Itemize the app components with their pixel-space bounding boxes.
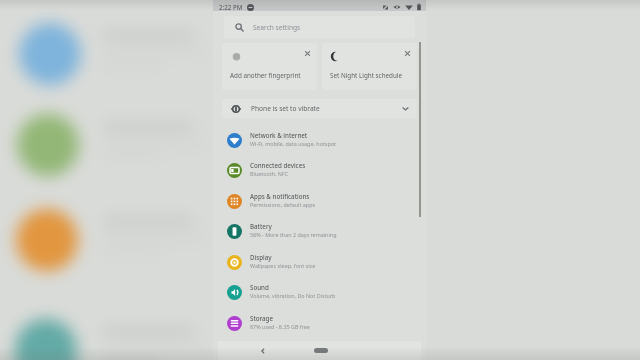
staticText: Wi-Fi, mobile, data usage, hotspot (250, 140, 336, 147)
staticText: Add another fingerprint (230, 71, 301, 80)
staticText: 58% - More than 2 days remaining (250, 231, 337, 238)
staticText: Network & internet (250, 131, 308, 139)
staticText: 87% used - 8.35 GB free (250, 323, 310, 330)
staticText: Search settings (253, 23, 301, 32)
staticText: Storage (250, 314, 273, 322)
button[interactable]: Search settings (224, 16, 415, 38)
staticText: Apps & notifications (250, 192, 310, 200)
staticText: Wallpaper, sleep, font size (250, 262, 316, 269)
staticText: Battery (250, 222, 272, 230)
button[interactable]: Apps & notifications (213, 186, 426, 217)
button[interactable]: Dismiss (222, 43, 317, 90)
staticText: Volume, vibration, Do Not Disturb (250, 292, 336, 299)
button[interactable]: Display (213, 247, 426, 278)
button[interactable]: Dismiss (303, 49, 312, 58)
staticText: Display (250, 253, 272, 261)
staticText: Permissions, default apps (250, 201, 316, 208)
staticText: Bluetooth, NFC (250, 170, 289, 177)
button[interactable]: Network & internet (213, 125, 426, 156)
button[interactable]: Dismiss (403, 49, 412, 58)
button[interactable]: Dismiss (322, 43, 417, 90)
staticText: Set Night Light schedule (330, 71, 403, 80)
button[interactable]: Home (314, 348, 328, 353)
staticText: Phone is set to vibrate (251, 104, 320, 113)
button[interactable]: Back (256, 344, 270, 358)
staticText: Connected devices (250, 161, 306, 169)
staticText: 2:22 PM (219, 3, 243, 11)
button[interactable]: Storage (213, 308, 426, 339)
staticText: Sound (250, 283, 269, 291)
button[interactable]: Connected devices (213, 155, 426, 186)
button[interactable]: Sound (213, 277, 426, 308)
button[interactable]: Phone is set to vibrate (222, 99, 417, 118)
button[interactable]: Battery (213, 216, 426, 247)
